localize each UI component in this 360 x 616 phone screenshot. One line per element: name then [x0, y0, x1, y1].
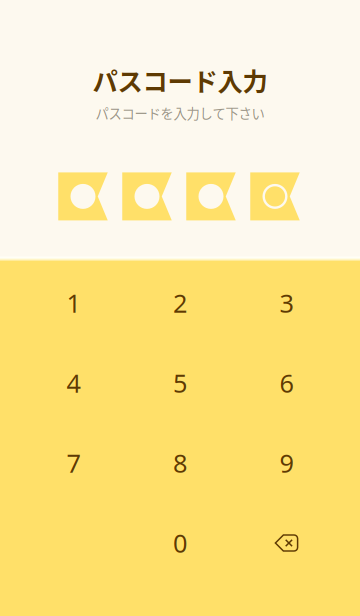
button[interactable]: 5 — [127, 343, 233, 423]
button[interactable]: 0 — [127, 503, 233, 583]
button[interactable]: 7 — [20, 423, 126, 503]
button[interactable]: 2 — [127, 263, 233, 343]
staticText: 1 — [66, 286, 80, 320]
staticText: 7 — [66, 446, 80, 480]
button[interactable]: 8 — [127, 423, 233, 503]
button[interactable]: 1 — [20, 263, 126, 343]
staticText: 2 — [173, 286, 187, 320]
staticText: 8 — [173, 446, 187, 480]
staticText: 5 — [173, 366, 187, 400]
staticText: パスコード入力 — [92, 62, 267, 98]
staticText: パスコードを入力して下さい — [95, 103, 264, 123]
staticText: 4 — [66, 366, 80, 400]
staticText: 0 — [173, 526, 187, 560]
button[interactable]: 6 — [233, 343, 339, 423]
button[interactable]: 9 — [233, 423, 339, 503]
staticText: 9 — [279, 446, 293, 480]
staticText: 6 — [279, 366, 293, 400]
button[interactable]: 4 — [20, 343, 126, 423]
button[interactable]: Delete — [233, 503, 339, 583]
button[interactable]: 3 — [233, 263, 339, 343]
staticText: 3 — [279, 286, 293, 320]
